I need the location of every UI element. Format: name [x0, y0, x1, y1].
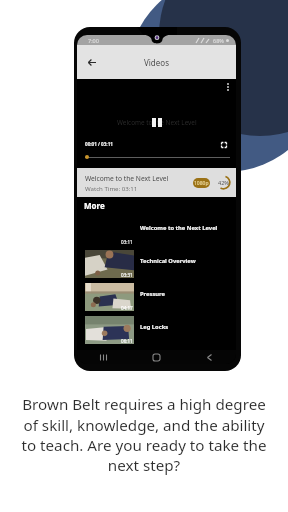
- staticText: Pressure: [140, 290, 166, 298]
- staticText: 1080p: [194, 180, 209, 187]
- staticText: Videos: [144, 57, 169, 68]
- button[interactable]: Home: [130, 350, 183, 364]
- staticText: Welcome to the Next Level: [140, 224, 218, 232]
- staticText: 04:17: [121, 305, 133, 311]
- staticText: 03:11: [121, 239, 133, 245]
- staticText: Technical Overview: [140, 257, 196, 265]
- staticText: Watch Time: 03:11: [85, 184, 138, 192]
- staticText: 06:11: [121, 338, 133, 344]
- button[interactable]: 04:17: [77, 283, 236, 316]
- button[interactable]: Back: [82, 52, 102, 72]
- staticText: More: [84, 200, 105, 211]
- staticText: 68%: [213, 37, 224, 44]
- button[interactable]: Recents: [77, 350, 130, 364]
- staticText: Leg Locks: [140, 323, 169, 331]
- button[interactable]: 06:11: [77, 316, 236, 349]
- button[interactable]: Back: [183, 350, 236, 364]
- button[interactable]: 03:11: [77, 217, 236, 250]
- button[interactable]: 1080p: [193, 178, 210, 188]
- button[interactable]: 03:31: [77, 250, 236, 283]
- staticText: Brown Belt requires a high degree of ski…: [19, 394, 269, 475]
- staticText: Welcome to the Next Level: [85, 174, 169, 183]
- staticText: 00:01 / 03:11: [85, 141, 113, 147]
- button[interactable]: Fullscreen: [221, 142, 227, 148]
- staticText: 03:31: [121, 272, 133, 278]
- button[interactable]: Welcome to the Next Level: [77, 168, 236, 197]
- button[interactable]: More options: [227, 83, 229, 91]
- staticText: 7:00: [88, 37, 99, 44]
- staticText: Welcome to the Next Level: [117, 118, 197, 127]
- staticText: 42%: [218, 179, 229, 186]
